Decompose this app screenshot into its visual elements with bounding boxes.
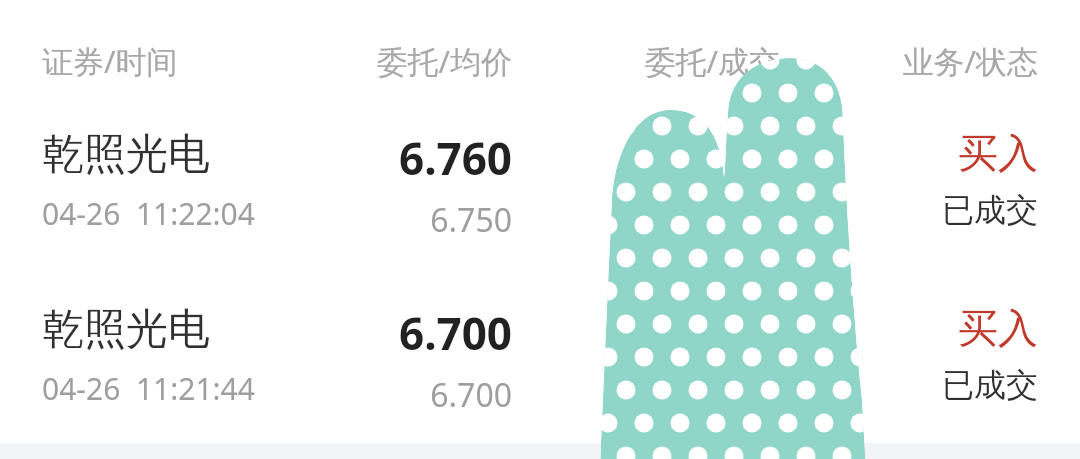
staticText: 6.760 (398, 128, 512, 188)
staticText: 乾照光电 (42, 303, 210, 356)
staticText: 6.700 (430, 373, 512, 417)
staticText: 证券/时间 (42, 40, 178, 82)
staticText: 买入 (958, 128, 1038, 178)
staticText: 6.750 (430, 198, 512, 242)
button[interactable]: 乾照光电 (0, 285, 1080, 459)
staticText: 委托/均价 (212, 40, 512, 82)
staticText: 6.700 (398, 303, 512, 363)
button[interactable]: 乾照光电 (0, 110, 1080, 285)
other: Decorative polka dot oven mitt sticker (0, 0, 1080, 459)
staticText: 已成交 (942, 365, 1038, 405)
staticText: 乾照光电 (42, 128, 210, 181)
staticText: 买入 (958, 303, 1038, 353)
staticText: 04-26 11:22:04 (42, 193, 255, 234)
staticText: 业务/状态 (738, 40, 1038, 82)
staticText: 已成交 (942, 190, 1038, 230)
staticText: 委托/成交 (480, 40, 780, 82)
staticText: 04-26 11:21:44 (42, 368, 255, 409)
